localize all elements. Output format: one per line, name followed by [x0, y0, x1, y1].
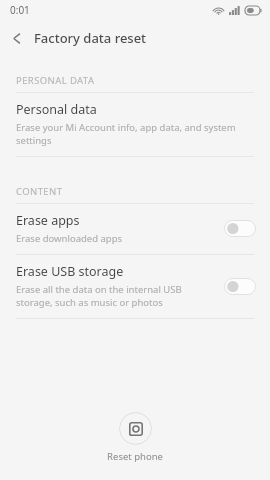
- button[interactable]: Back: [0, 21, 34, 55]
- button[interactable]: Toggle: [224, 220, 256, 237]
- staticText: CONTENT: [16, 185, 63, 198]
- button[interactable]: Erase USB storage: [0, 255, 270, 318]
- button[interactable]: Personal data: [0, 93, 270, 156]
- staticText: Erase all the data on the internal USB s…: [16, 283, 182, 309]
- button[interactable]: Toggle: [224, 278, 256, 295]
- button[interactable]: Erase apps: [0, 204, 270, 254]
- staticText: Erase your Mi Account info, app data, an…: [16, 121, 236, 147]
- staticText: PERSONAL DATA: [16, 74, 95, 87]
- staticText: Erase apps: [16, 212, 80, 229]
- staticText: Erase USB storage: [16, 263, 124, 280]
- staticText: Factory data reset: [34, 29, 147, 47]
- staticText: Reset phone: [107, 450, 163, 463]
- staticText: Personal data: [16, 101, 97, 118]
- staticText: 0:01: [10, 3, 30, 17]
- button[interactable]: Reset phone: [99, 409, 171, 466]
- staticText: Erase downloaded apps: [16, 232, 123, 245]
